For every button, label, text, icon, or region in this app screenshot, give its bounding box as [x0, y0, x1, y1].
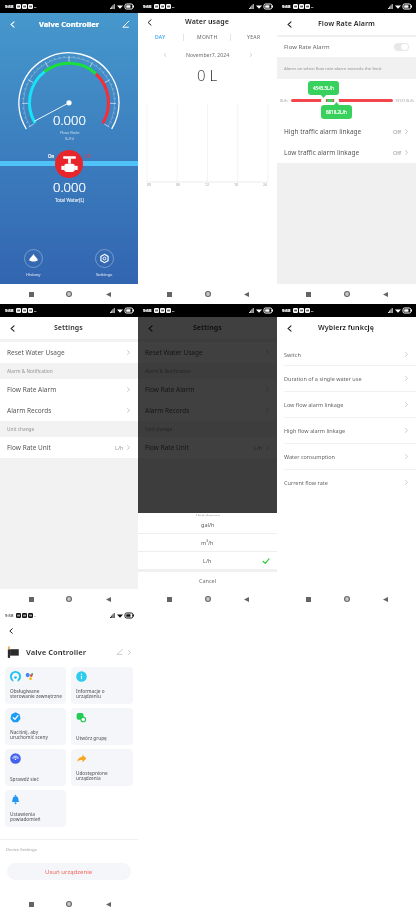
- button[interactable]: Settings: [89, 249, 120, 277]
- button[interactable]: Recents: [23, 896, 39, 912]
- staticText: Flow Rate Alarm: [284, 43, 330, 51]
- button[interactable]: L/h: [138, 552, 277, 569]
- button[interactable]: Udostępnione urządzenia: [71, 749, 133, 786]
- button[interactable]: Recents: [23, 591, 39, 607]
- button[interactable]: Reset Water Usage: [138, 342, 277, 363]
- button[interactable]: Flow Rate Alarm: [138, 379, 277, 400]
- button[interactable]: Home: [200, 286, 216, 302]
- button[interactable]: MONTH: [184, 31, 230, 44]
- button[interactable]: Home: [339, 286, 355, 302]
- button[interactable]: Utwórz grupę: [71, 708, 133, 745]
- staticText: Sprawdź sieć: [10, 776, 39, 782]
- button[interactable]: Back: [5, 17, 19, 31]
- button[interactable]: Water consumption: [277, 444, 416, 469]
- button[interactable]: Back: [238, 591, 254, 607]
- staticText: 9:58: [143, 308, 152, 314]
- button[interactable]: Home: [339, 591, 355, 607]
- button[interactable]: Home: [61, 591, 77, 607]
- button[interactable]: Back: [377, 286, 393, 302]
- staticText: ··: [311, 4, 314, 10]
- staticText: Flow Rate: [60, 129, 80, 135]
- staticText: 18: [234, 182, 239, 187]
- button[interactable]: Back: [143, 16, 156, 29]
- button[interactable]: YEAR: [231, 31, 277, 44]
- staticText: Low flow alarm linkage: [284, 401, 344, 408]
- staticText: 4545.5L/h: [313, 85, 334, 91]
- button[interactable]: Home: [200, 591, 216, 607]
- button[interactable]: Back: [282, 17, 296, 31]
- button[interactable]: Duration of a single water use: [277, 366, 416, 391]
- button[interactable]: Back: [100, 286, 116, 302]
- button[interactable]: Informacje o urządzeniu: [71, 667, 133, 704]
- staticText: ··: [34, 4, 37, 10]
- button[interactable]: Current flow rate: [277, 470, 416, 495]
- staticText: Off: [84, 153, 91, 159]
- staticText: Water usage: [185, 17, 229, 27]
- staticText: Valve Controller: [39, 19, 99, 29]
- button[interactable]: History: [18, 249, 49, 277]
- staticText: Device Settings: [6, 846, 37, 852]
- button[interactable]: Reset Water Usage: [0, 342, 138, 363]
- button[interactable]: Recents: [300, 286, 316, 302]
- button[interactable]: Back: [5, 321, 19, 335]
- button[interactable]: Flow Rate Unit: [138, 437, 277, 458]
- button[interactable]: Recents: [161, 591, 177, 607]
- button[interactable]: Flow Rate Alarm: [0, 379, 138, 400]
- button[interactable]: Cancel: [138, 572, 277, 589]
- staticText: Switch: [284, 351, 301, 358]
- button[interactable]: Back: [143, 321, 157, 335]
- staticText: Off: [393, 149, 402, 156]
- staticText: 00: [147, 182, 152, 187]
- button[interactable]: Previous: [160, 50, 169, 59]
- staticText: 0 L: [197, 65, 218, 83]
- staticText: Udostępnione urządzenia: [76, 770, 129, 782]
- staticText: Reset Water Usage: [7, 348, 65, 357]
- button[interactable]: Edit: [119, 17, 133, 31]
- button[interactable]: Flow Rate Unit: [0, 437, 138, 458]
- button[interactable]: Switch: [277, 343, 416, 365]
- button[interactable]: Alarm Records: [138, 400, 277, 421]
- staticText: Unit change: [145, 426, 173, 433]
- staticText: 9:58: [143, 4, 152, 10]
- button[interactable]: Next: [246, 50, 255, 59]
- staticText: 9:58: [5, 308, 14, 314]
- button[interactable]: Low traffic alarm linkage: [277, 142, 416, 163]
- button[interactable]: Obsługiwane sterowanie zewnętrzne: [5, 667, 66, 704]
- button[interactable]: Home: [61, 896, 77, 912]
- staticText: Utwórz grupę: [76, 735, 107, 741]
- button[interactable]: Home: [61, 286, 77, 302]
- staticText: 06: [176, 182, 181, 187]
- button[interactable]: Usuń urządzenie: [7, 863, 131, 880]
- staticText: 12: [205, 182, 210, 187]
- staticText: ··: [34, 613, 37, 619]
- button[interactable]: Toggle valve: [55, 150, 83, 178]
- button[interactable]: m³/h: [138, 534, 277, 551]
- button[interactable]: Back: [238, 286, 254, 302]
- button[interactable]: Naciśnij, aby uruchomić sceny: [5, 708, 66, 745]
- staticText: Settings: [96, 271, 113, 277]
- button[interactable]: Back: [282, 321, 296, 335]
- button[interactable]: High flow alarm linkage: [277, 418, 416, 443]
- staticText: History: [26, 271, 41, 277]
- button[interactable]: Recents: [300, 591, 316, 607]
- button[interactable]: Sprawdź sieć: [5, 749, 66, 786]
- staticText: Flow Rate Alarm: [318, 19, 375, 29]
- button[interactable]: Recents: [23, 286, 39, 302]
- staticText: Naciśnij, aby uruchomić sceny: [10, 729, 62, 741]
- staticText: gal/h: [201, 521, 215, 528]
- button[interactable]: Back: [377, 591, 393, 607]
- button[interactable]: Back: [100, 591, 116, 607]
- button[interactable]: Alarm Records: [0, 400, 138, 421]
- staticText: Settings: [54, 323, 83, 333]
- button[interactable]: Flow Rate Alarm: [277, 37, 416, 57]
- button[interactable]: High traffic alarm linkage: [277, 121, 416, 142]
- button[interactable]: DAY: [138, 31, 183, 44]
- button[interactable]: Ustawienia powiadomień: [5, 790, 66, 827]
- button[interactable]: Back: [100, 896, 116, 912]
- staticText: Reset Water Usage: [145, 348, 203, 357]
- button[interactable]: Recents: [161, 286, 177, 302]
- staticText: Usuń urządzenie: [45, 868, 93, 876]
- button[interactable]: Back: [5, 625, 17, 637]
- button[interactable]: gal/h: [138, 516, 277, 533]
- button[interactable]: Low flow alarm linkage: [277, 392, 416, 417]
